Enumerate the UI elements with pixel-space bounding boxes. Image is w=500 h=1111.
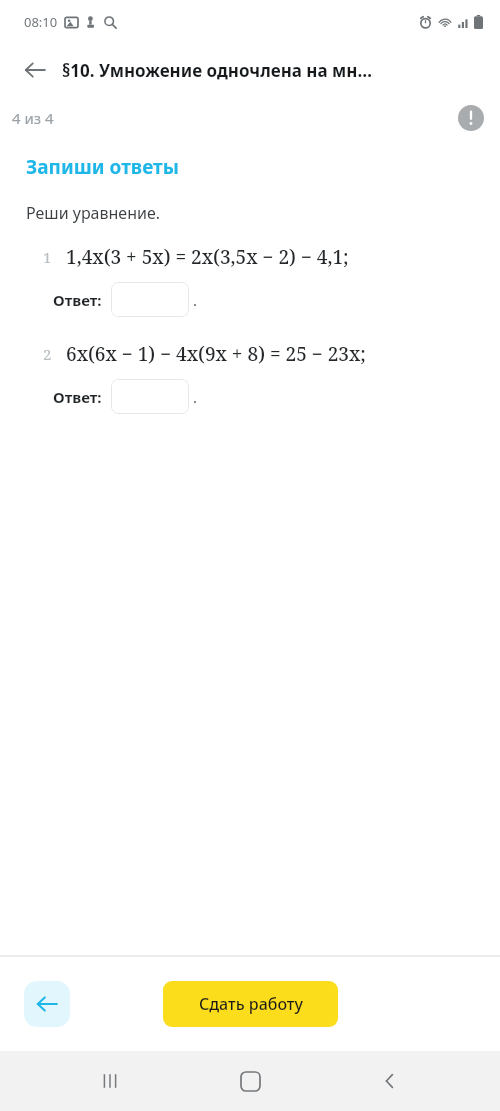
staticText: Запиши ответы: [26, 154, 179, 180]
staticText: .: [193, 387, 198, 407]
button[interactable]: Последние приложения: [80, 1051, 140, 1111]
staticText: Сдать работу: [199, 993, 303, 1015]
staticText: §10. Умножение одночлена на мн…: [62, 59, 372, 82]
button[interactable]: Поле ответа: [111, 379, 189, 414]
button[interactable]: Поле ответа: [111, 282, 189, 317]
staticText: Ответ:: [53, 290, 102, 310]
staticText: 1: [43, 247, 52, 267]
staticText: .: [193, 290, 198, 310]
staticText: Ответ:: [53, 387, 102, 407]
staticText: 4 из 4: [12, 108, 54, 128]
button[interactable]: Информация: [454, 101, 488, 135]
staticText: 1,4x(3 + 5x) = 2x(3,5x − 2) − 4,1;: [66, 244, 349, 270]
button[interactable]: Сдать работу: [163, 981, 338, 1027]
button[interactable]: Главный экран: [220, 1051, 280, 1111]
staticText: Реши уравнение.: [26, 202, 161, 224]
button[interactable]: Назад: [360, 1051, 420, 1111]
staticText: 2: [43, 344, 52, 364]
staticText: 08:10: [24, 13, 58, 31]
button[interactable]: Назад: [12, 47, 58, 93]
button[interactable]: Назад: [24, 981, 70, 1027]
staticText: 6x(6x − 1) − 4x(9x + 8) = 25 − 23x;: [66, 341, 366, 367]
